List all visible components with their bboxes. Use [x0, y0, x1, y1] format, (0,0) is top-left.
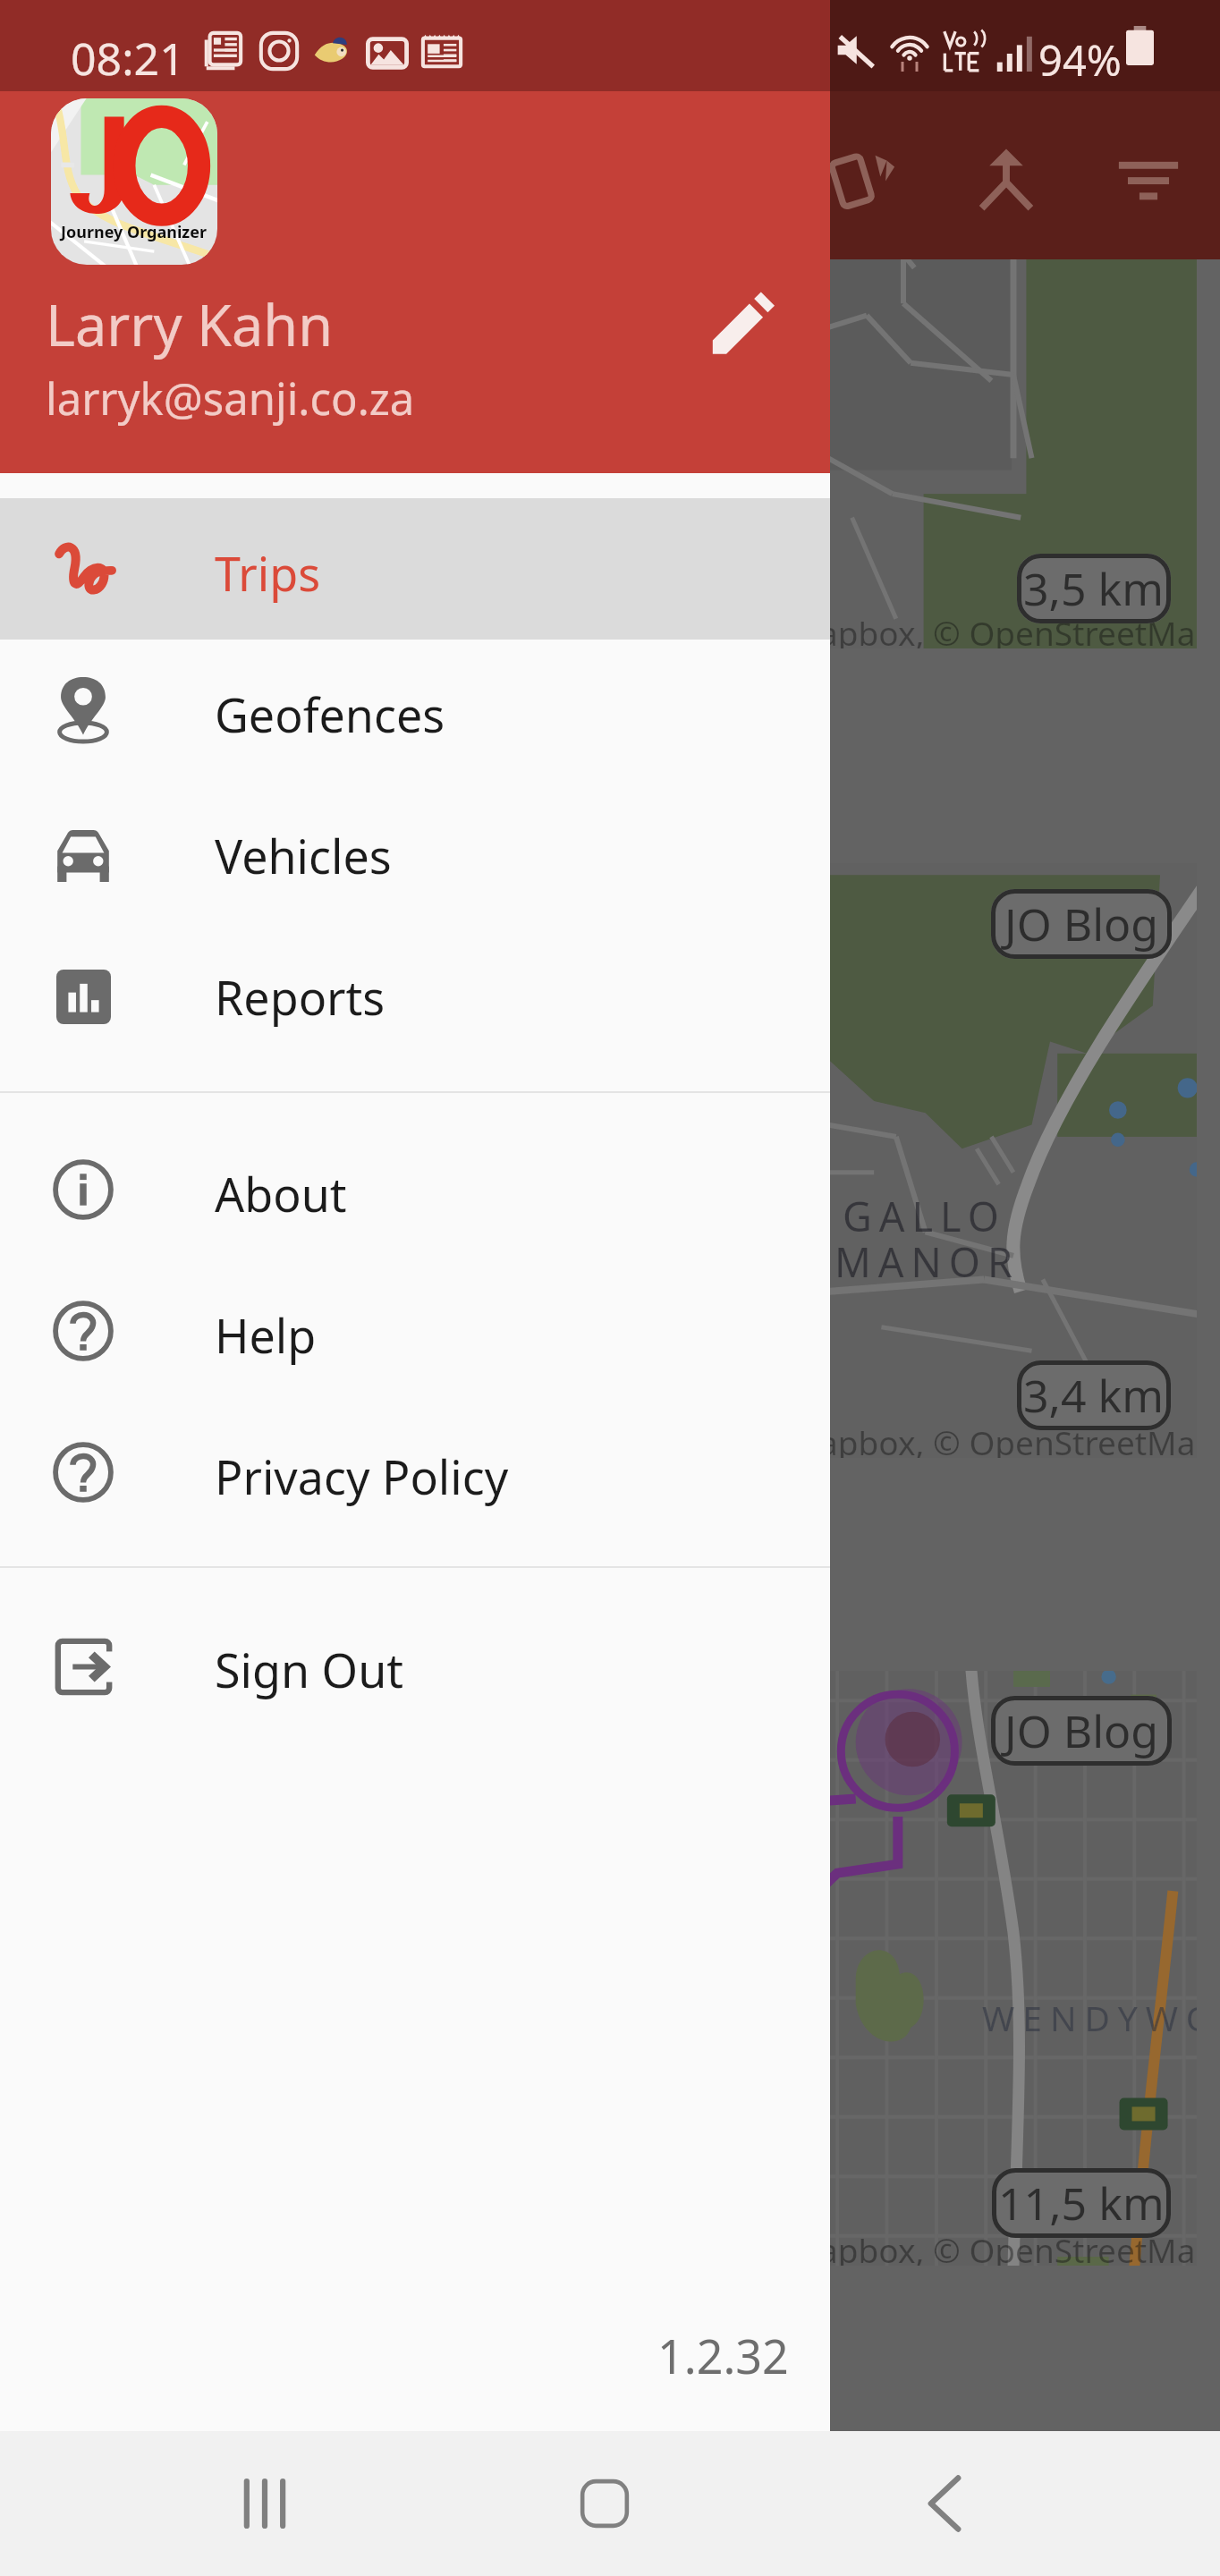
button[interactable]: Geofences — [0, 640, 830, 781]
staticText: JO Blog — [1004, 1700, 1159, 1761]
button[interactable]: Recents — [211, 2431, 318, 2576]
button[interactable]: Privacy Policy — [0, 1402, 830, 1543]
staticText: Reports — [215, 965, 385, 1029]
button[interactable]: Filter trips — [1095, 126, 1202, 233]
staticText: WENDYWOOD — [982, 1994, 1197, 2041]
staticText: 08:21 — [71, 28, 185, 89]
button[interactable]: Trips — [0, 498, 830, 640]
button[interactable]: Edit profile — [689, 273, 792, 377]
staticText: JO Blog — [1004, 894, 1159, 954]
staticText: 11,5 km — [998, 2173, 1165, 2233]
staticText: Sign Out — [215, 1638, 404, 1701]
button[interactable]: apbox, © OpenStreetMap — [0, 259, 1197, 817]
button[interactable]: Swap trips — [811, 126, 919, 233]
button[interactable]: Sign Out — [0, 1595, 830, 1736]
button[interactable]: Merge trips — [953, 126, 1060, 233]
button[interactable]: Home — [551, 2431, 658, 2576]
staticText: Vehicles — [215, 824, 392, 887]
staticText: Help — [215, 1303, 317, 1367]
staticText: larryk@sanji.co.za — [46, 369, 415, 428]
staticText: apbox, © OpenStreetMap — [819, 610, 1197, 648]
button[interactable]: Vehicles — [0, 781, 830, 922]
staticText: 94% — [1038, 31, 1122, 89]
button[interactable]: Reports — [0, 922, 830, 1063]
staticText: Trips — [215, 541, 321, 605]
staticText: 3,5 km — [1023, 558, 1165, 619]
button[interactable]: Back — [891, 2431, 998, 2576]
staticText: Privacy Policy — [215, 1445, 509, 1508]
staticText: GALLO — [843, 1189, 1006, 1243]
button[interactable]: apbox, © OpenStreetMap — [0, 863, 1197, 1623]
staticText: Larry Kahn — [46, 286, 334, 363]
staticText: Geofences — [215, 682, 445, 746]
staticText: 1.2.32 — [657, 2324, 789, 2387]
button[interactable]: About — [0, 1119, 830, 1260]
staticText: 3,4 km — [1023, 1365, 1165, 1426]
staticText: MANOR — [835, 1234, 1020, 1289]
staticText: apbox, © OpenStreetMap — [819, 2227, 1197, 2266]
button[interactable]: Help — [0, 1260, 830, 1402]
staticText: About — [215, 1162, 347, 1225]
staticText: apbox, © OpenStreetMap — [819, 1419, 1197, 1458]
button[interactable]: apbox, © OpenStreetMap — [0, 1671, 1197, 2430]
staticText: Journey Organizer — [61, 221, 208, 243]
